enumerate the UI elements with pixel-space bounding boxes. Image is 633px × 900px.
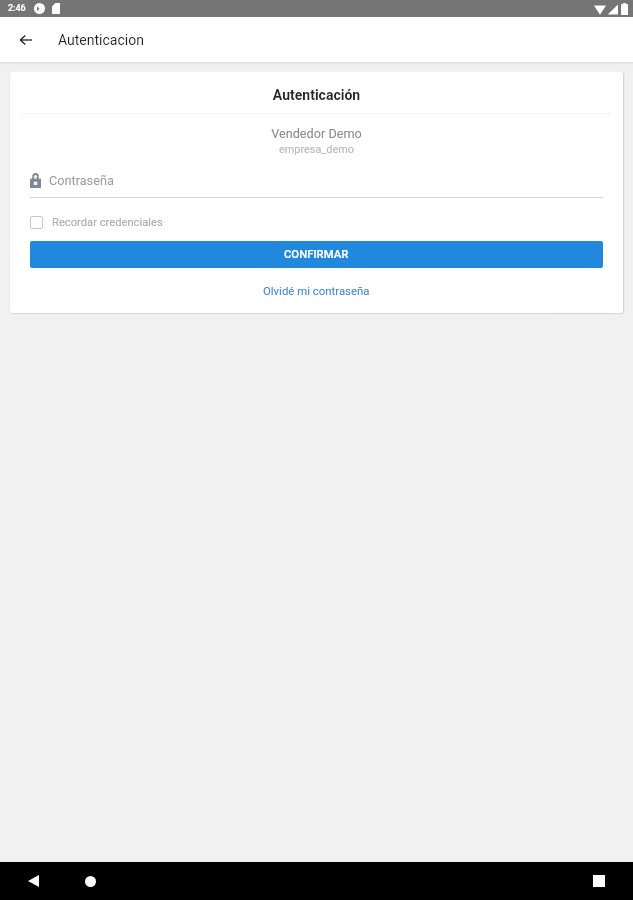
staticText: Contraseña — [49, 173, 114, 188]
staticText: 2:46 — [8, 3, 26, 14]
staticText: Vendedor Demo — [10, 126, 623, 141]
staticText: Olvidé mi contraseña — [263, 284, 370, 297]
staticText: Recordar credenciales — [52, 216, 163, 229]
button[interactable]: Back — [6, 20, 46, 60]
staticText: CONFIRMAR — [284, 248, 349, 261]
button[interactable]: Recents — [584, 866, 614, 896]
staticText: empresa_demo — [10, 143, 623, 156]
staticText: Autenticación — [10, 87, 623, 103]
button[interactable]: Olvidé mi contraseña — [10, 284, 623, 297]
staticText: Autenticacion — [58, 32, 144, 48]
button[interactable]: Back — [18, 866, 48, 896]
button[interactable]: Recordar credenciales — [30, 216, 163, 229]
button[interactable]: Home — [75, 866, 105, 896]
button[interactable]: CONFIRMAR — [30, 241, 603, 268]
